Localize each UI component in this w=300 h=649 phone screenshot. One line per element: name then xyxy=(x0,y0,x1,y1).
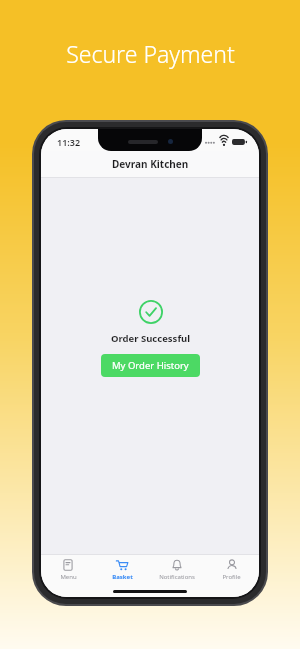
staticText: Notifications xyxy=(159,573,195,581)
staticText: Order Successful xyxy=(111,332,191,345)
button[interactable]: Menu xyxy=(41,555,95,585)
staticText: Devran Kitchen xyxy=(112,157,189,171)
button[interactable]: Profile xyxy=(204,555,259,585)
staticText: My Order History xyxy=(112,359,189,372)
button[interactable]: Basket xyxy=(95,555,149,585)
staticText: Menu xyxy=(60,573,77,581)
button[interactable]: My Order History xyxy=(101,354,200,377)
button[interactable]: Notifications xyxy=(149,555,204,585)
staticText: Basket xyxy=(112,573,133,581)
staticText: Secure Payment xyxy=(66,38,235,69)
staticText: 11:32 xyxy=(57,136,81,148)
staticText: Profile xyxy=(222,573,241,581)
